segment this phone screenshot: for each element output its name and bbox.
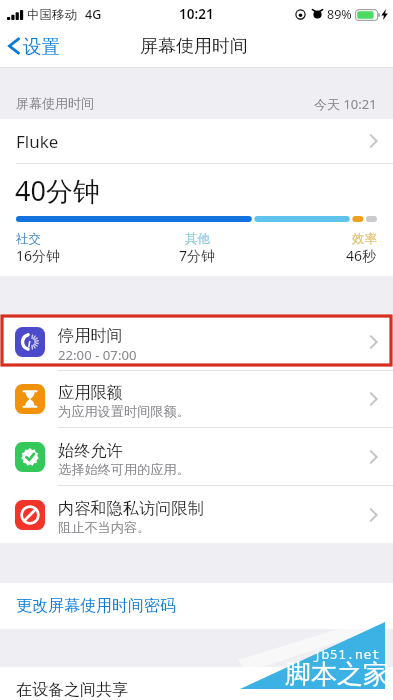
- staticText: 在设备之间共享: [16, 680, 128, 700]
- staticText: 46秒: [346, 246, 377, 265]
- staticText: 16分钟: [16, 246, 61, 265]
- button[interactable]: 始终允许: [0, 428, 393, 485]
- staticText: 为应用设置时间限额。: [58, 403, 190, 420]
- button[interactable]: Fluke: [0, 119, 393, 163]
- button[interactable]: 内容和隐私访问限制: [0, 486, 393, 543]
- button[interactable]: 停用时间: [0, 314, 393, 370]
- staticText: Fluke: [16, 130, 59, 153]
- staticText: 40分钟: [15, 172, 100, 209]
- staticText: 屏幕使用时间: [16, 95, 94, 111]
- button[interactable]: 在设备之间共享: [0, 667, 393, 700]
- staticText: 屏幕使用时间: [140, 35, 248, 58]
- staticText: 设置: [23, 35, 60, 58]
- staticText: 应用限额: [58, 382, 123, 402]
- staticText: 脚本之家: [285, 658, 389, 691]
- staticText: 7分钟: [179, 246, 216, 265]
- staticText: 22:00 - 07:00: [58, 346, 137, 364]
- staticText: 89%: [327, 6, 352, 23]
- staticText: 中国移动: [27, 7, 77, 23]
- staticText: 今天 10:21: [314, 95, 377, 113]
- button[interactable]: 更改屏幕使用时间密码: [0, 583, 393, 629]
- staticText: 阻止不当内容。: [58, 519, 151, 536]
- staticText: 内容和隐私访问限制: [58, 498, 204, 518]
- staticText: 其他: [185, 231, 210, 247]
- staticText: jb51.net: [313, 645, 381, 663]
- staticText: 更改屏幕使用时间密码: [16, 596, 176, 616]
- button[interactable]: 设置: [5, 32, 64, 63]
- staticText: 4G: [85, 6, 102, 23]
- button[interactable]: 应用限额: [0, 371, 393, 427]
- staticText: 选择始终可用的应用。: [58, 461, 190, 478]
- staticText: 社交: [16, 231, 41, 247]
- staticText: 停用时间: [58, 325, 123, 345]
- staticText: 始终允许: [58, 440, 123, 460]
- staticText: 效率: [352, 231, 377, 247]
- staticText: 10:21: [179, 5, 214, 23]
